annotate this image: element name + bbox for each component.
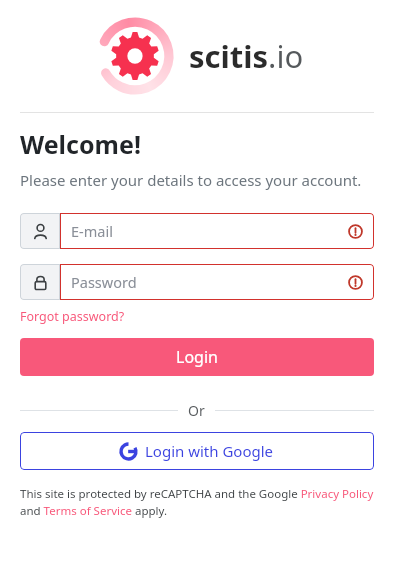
button[interactable]: User bbox=[20, 213, 374, 249]
staticText: Welcome! bbox=[20, 127, 141, 161]
staticText: scitis.io bbox=[189, 35, 304, 77]
other: User bbox=[32, 223, 49, 240]
button[interactable]: Forgot password? bbox=[20, 308, 125, 325]
button[interactable]: Login bbox=[20, 338, 374, 376]
other: Google bbox=[120, 443, 137, 460]
other: Error bbox=[348, 224, 363, 239]
staticText: Login bbox=[176, 346, 218, 368]
staticText: Login with Google bbox=[145, 441, 274, 461]
staticText: Password bbox=[71, 272, 348, 292]
other: Error bbox=[348, 275, 363, 290]
staticText: Or bbox=[188, 401, 205, 420]
staticText: This site is protected by reCAPTCHA and … bbox=[20, 486, 374, 519]
staticText: Forgot password? bbox=[20, 308, 125, 325]
button[interactable]: Password bbox=[20, 264, 374, 300]
staticText: Please enter your details to access your… bbox=[20, 170, 362, 190]
other: Password bbox=[32, 274, 49, 291]
other: scitis.io logo bbox=[91, 12, 179, 100]
button[interactable]: Google bbox=[20, 432, 374, 470]
staticText: E-mail bbox=[71, 221, 348, 241]
